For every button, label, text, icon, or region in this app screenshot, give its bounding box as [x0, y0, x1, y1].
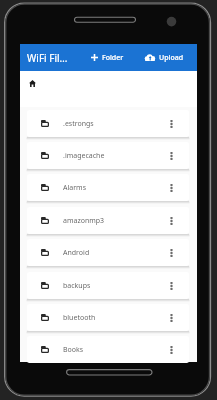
button[interactable]: Home — [22, 73, 42, 93]
button[interactable]: More options — [161, 110, 181, 137]
staticText: Books — [63, 345, 84, 355]
staticText: Folder — [102, 53, 124, 63]
button[interactable]: More options — [161, 207, 181, 234]
button[interactable]: amazonmp3 — [27, 207, 189, 234]
staticText: Android — [63, 248, 90, 258]
button[interactable]: More options — [161, 174, 181, 201]
button[interactable]: Android — [27, 239, 189, 266]
staticText: Upload — [159, 53, 184, 63]
staticText: bluetooth — [63, 313, 96, 323]
staticText: amazonmp3 — [63, 216, 105, 226]
button[interactable]: More options — [161, 336, 181, 363]
button[interactable]: More options — [161, 304, 181, 331]
button[interactable]: Upload — [143, 44, 197, 71]
staticText: WiFi Fil… — [27, 51, 68, 65]
button[interactable]: bluetooth — [27, 304, 189, 331]
staticText: Alarms — [63, 183, 86, 193]
button[interactable]: More options — [161, 239, 181, 266]
button[interactable]: .imagecache — [27, 142, 189, 169]
staticText: .imagecache — [63, 151, 105, 161]
staticText: .estrongs — [63, 119, 94, 129]
button[interactable]: backups — [27, 272, 189, 299]
staticText: backups — [63, 281, 91, 291]
button[interactable]: WiFi Fil… — [22, 44, 86, 71]
button[interactable]: Alarms — [27, 174, 189, 201]
button[interactable]: More options — [161, 272, 181, 299]
button[interactable]: .estrongs — [27, 110, 189, 137]
button[interactable]: Books — [27, 336, 189, 363]
button[interactable]: More options — [161, 142, 181, 169]
button[interactable]: Folder — [87, 44, 145, 71]
